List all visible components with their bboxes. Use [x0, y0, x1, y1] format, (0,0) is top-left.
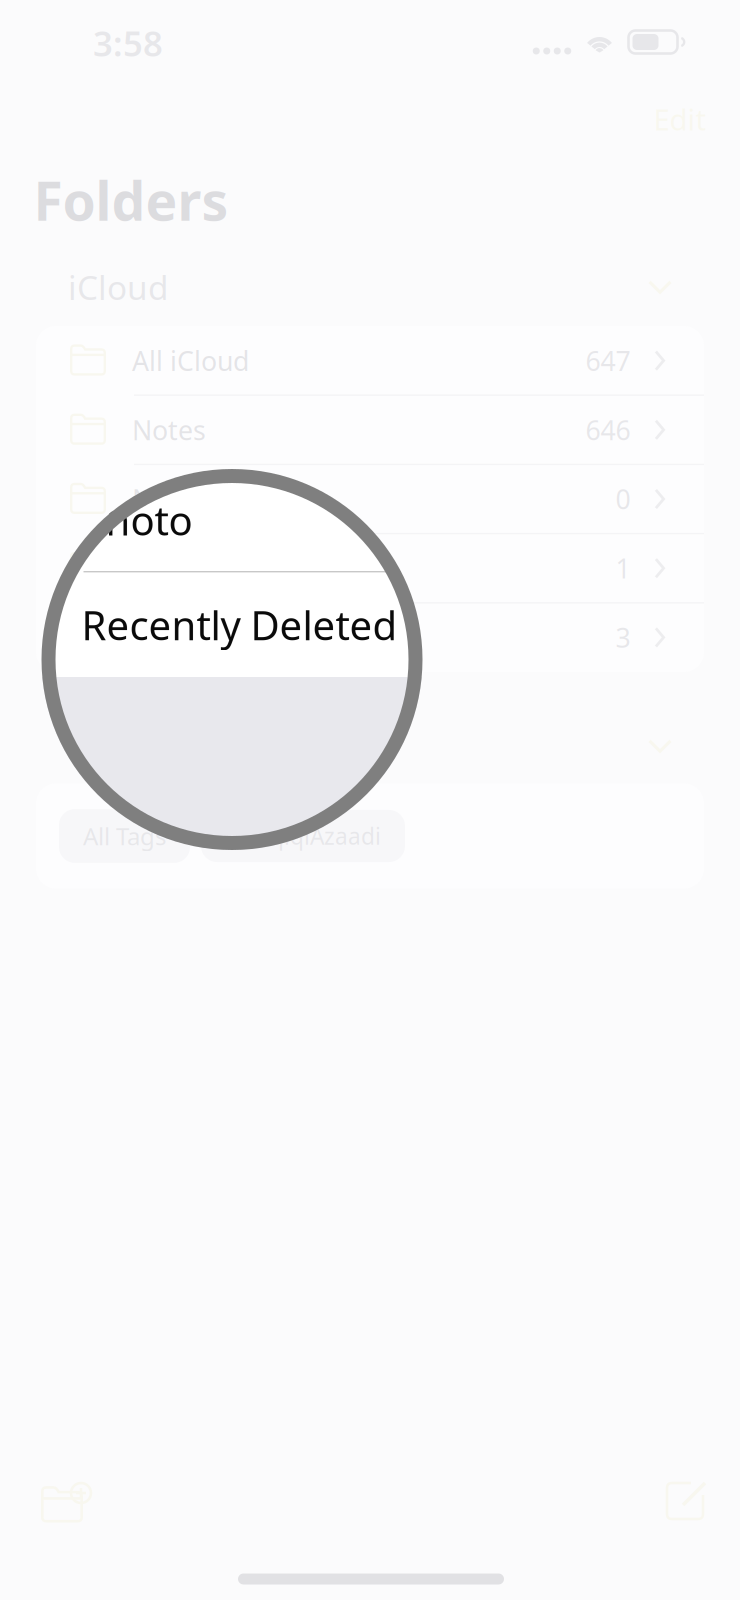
staticText: hoto	[105, 493, 192, 546]
staticText: 647	[585, 343, 630, 378]
staticText: All Tags	[83, 820, 166, 852]
button[interactable]: New Note	[661, 1479, 709, 1523]
staticText: Recently Deleted	[132, 620, 343, 655]
staticText: 1	[615, 550, 630, 586]
button[interactable]: Recently Deleted	[36, 603, 704, 671]
staticText: New Folder	[132, 481, 274, 517]
button[interactable]: Photo	[36, 534, 704, 602]
staticText: 0	[615, 481, 630, 517]
button[interactable]: Edit	[641, 89, 718, 148]
button[interactable]: New Folder	[38, 1478, 94, 1524]
button[interactable]: #HaqiqiAzaadi	[201, 810, 405, 862]
staticText: Folders	[33, 165, 228, 235]
staticText: iCloud	[68, 265, 169, 309]
button[interactable]: Tags	[0, 715, 740, 777]
staticText: 3	[615, 620, 630, 655]
button[interactable]: All Tags	[59, 809, 190, 863]
staticText: #HaqiqiAzaadi	[225, 821, 381, 851]
button[interactable]: All iCloud	[36, 327, 704, 394]
staticText: 646	[585, 412, 630, 447]
staticText: Notes	[132, 412, 206, 447]
staticText: 3:58	[93, 20, 163, 66]
staticText: Photo	[132, 550, 206, 586]
staticText: Recently Deleted	[81, 598, 397, 651]
staticText: All iCloud	[132, 343, 249, 378]
button[interactable]: New Folder	[36, 465, 704, 533]
staticText: Edit	[653, 99, 706, 138]
staticText: Tags	[68, 725, 136, 767]
